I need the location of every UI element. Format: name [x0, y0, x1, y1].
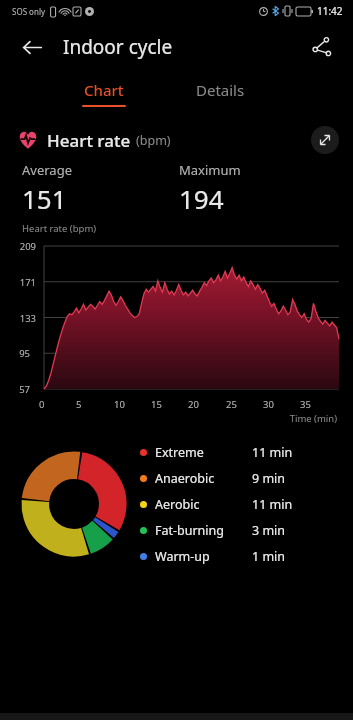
- staticText: Average: [22, 161, 72, 179]
- button[interactable]: Aerobic: [140, 491, 335, 517]
- staticText: 10: [114, 398, 125, 411]
- staticText: Chart: [84, 80, 124, 100]
- staticText: Fat-burning: [155, 522, 252, 539]
- staticText: Details: [196, 80, 245, 100]
- staticText: 35: [300, 398, 311, 411]
- staticText: Aerobic: [155, 496, 252, 513]
- staticText: 5: [76, 398, 82, 411]
- button[interactable]: Fat-burning: [140, 517, 335, 543]
- staticText: 9 min: [252, 470, 286, 487]
- staticText: (bpm): [136, 132, 171, 149]
- button[interactable]: Share: [305, 30, 339, 64]
- staticText: 209: [19, 240, 36, 253]
- staticText: 25: [226, 398, 237, 411]
- staticText: 57: [19, 383, 30, 396]
- button[interactable]: Anaerobic: [140, 465, 335, 491]
- staticText: 1 min: [252, 548, 286, 565]
- staticText: 95: [19, 347, 30, 360]
- staticText: 133: [19, 312, 36, 325]
- staticText: 11 min: [252, 444, 293, 461]
- staticText: 171: [19, 276, 36, 289]
- button[interactable]: Extreme: [140, 439, 335, 465]
- button[interactable]: Warm-up: [140, 543, 335, 569]
- staticText: Anaerobic: [155, 470, 252, 487]
- staticText: 0: [39, 398, 45, 411]
- button[interactable]: Back: [16, 31, 48, 63]
- staticText: 15: [151, 398, 162, 411]
- staticText: 11:42: [317, 4, 343, 18]
- staticText: Indoor cycle: [63, 34, 173, 60]
- staticText: Time (min): [0, 412, 337, 425]
- staticText: Maximum: [179, 161, 241, 179]
- staticText: 20: [188, 398, 199, 411]
- staticText: SOS only: [12, 6, 46, 17]
- staticText: 11 min: [252, 496, 293, 513]
- button[interactable]: Details: [176, 72, 264, 114]
- staticText: Warm-up: [155, 548, 252, 565]
- staticText: 194: [179, 181, 224, 216]
- staticText: Heart rate: [47, 129, 131, 152]
- staticText: Extreme: [155, 444, 252, 461]
- button[interactable]: Expand chart: [311, 126, 339, 154]
- staticText: 151: [22, 181, 67, 216]
- button[interactable]: Chart: [60, 72, 148, 114]
- staticText: 3 min: [252, 522, 286, 539]
- staticText: Heart rate (bpm): [22, 222, 97, 235]
- staticText: 30: [263, 398, 274, 411]
